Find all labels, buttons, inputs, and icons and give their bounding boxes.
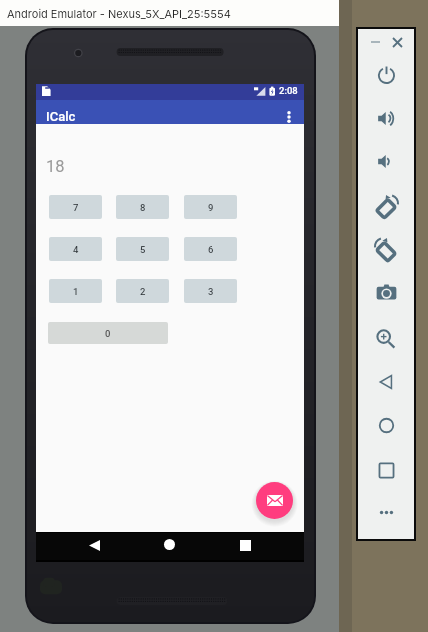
button[interactable]: Minimize: [360, 27, 390, 57]
button[interactable]: Take screenshot: [371, 277, 401, 307]
staticText: 18: [46, 157, 65, 176]
staticText: 7: [73, 202, 79, 213]
staticText: Android Emulator - Nexus_5X_API_25:5554: [7, 7, 231, 20]
button[interactable]: 3: [184, 279, 237, 303]
staticText: 2: [140, 286, 146, 297]
button[interactable]: 8: [116, 195, 169, 219]
button[interactable]: More options: [278, 106, 300, 128]
button[interactable]: Back: [371, 367, 401, 397]
button[interactable]: Recent apps: [223, 532, 267, 559]
button[interactable]: Close: [382, 27, 412, 57]
button[interactable]: 4: [49, 237, 102, 261]
staticText: 9: [208, 202, 214, 213]
button[interactable]: Volume down: [371, 146, 401, 176]
button[interactable]: 6: [184, 237, 237, 261]
button[interactable]: 2: [116, 279, 169, 303]
staticText: 0: [105, 328, 111, 339]
button[interactable]: 5: [116, 237, 169, 261]
button[interactable]: Back: [72, 532, 116, 559]
staticText: 2:08: [279, 85, 298, 96]
staticText: 3: [208, 286, 214, 297]
button[interactable]: Zoom: [371, 323, 401, 353]
button[interactable]: Power: [371, 59, 401, 89]
button[interactable]: Overview: [371, 455, 401, 485]
button[interactable]: Home: [371, 410, 401, 440]
staticText: 5: [140, 244, 146, 255]
button[interactable]: 1: [49, 279, 102, 303]
staticText: 8: [140, 202, 146, 213]
button[interactable]: Compose email: [256, 482, 293, 519]
button[interactable]: More: [371, 497, 401, 527]
button[interactable]: 9: [184, 195, 237, 219]
staticText: ICalc: [46, 109, 76, 124]
button[interactable]: 7: [49, 195, 102, 219]
staticText: 6: [208, 244, 214, 255]
button[interactable]: 0: [48, 322, 168, 344]
button[interactable]: Home: [147, 531, 191, 558]
button[interactable]: Rotate left: [371, 191, 401, 221]
staticText: 1: [73, 286, 79, 297]
button[interactable]: Volume up: [371, 103, 401, 133]
staticText: 4: [73, 244, 79, 255]
button[interactable]: Rotate right: [371, 234, 401, 264]
